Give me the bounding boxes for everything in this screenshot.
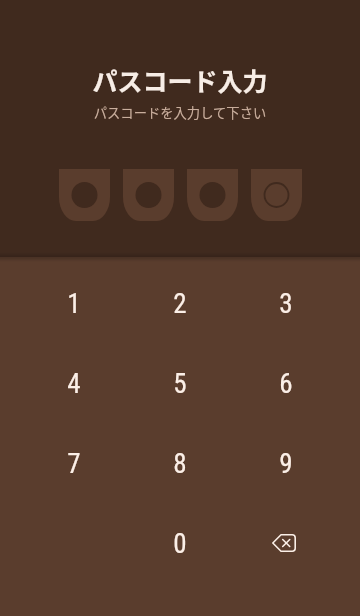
button[interactable]: 9 — [250, 428, 322, 500]
button[interactable] — [187, 169, 238, 221]
staticText: 2 — [173, 288, 187, 320]
button[interactable]: 6 — [250, 348, 322, 420]
button[interactable]: 0 — [144, 508, 216, 580]
staticText: 0 — [173, 528, 187, 560]
button[interactable]: 1 — [38, 268, 110, 340]
button[interactable] — [123, 169, 174, 221]
other: Backspace — [272, 534, 296, 552]
staticText: 6 — [279, 368, 293, 400]
button[interactable]: 5 — [144, 348, 216, 420]
button[interactable]: 2 — [144, 268, 216, 340]
staticText: 3 — [279, 288, 293, 320]
button[interactable]: 8 — [144, 428, 216, 500]
button[interactable] — [59, 169, 110, 221]
button[interactable]: 4 — [38, 348, 110, 420]
staticText: 7 — [67, 448, 81, 480]
staticText: 4 — [67, 368, 81, 400]
button[interactable]: 3 — [250, 268, 322, 340]
staticText: 1 — [67, 288, 81, 320]
staticText: 8 — [173, 448, 187, 480]
button[interactable]: 7 — [38, 428, 110, 500]
staticText: パスコード入力 — [0, 62, 360, 98]
button[interactable]: Backspace — [250, 508, 322, 580]
staticText: 5 — [173, 368, 187, 400]
button[interactable] — [251, 169, 302, 221]
staticText: パスコードを入力して下さい — [0, 103, 360, 122]
staticText: 9 — [279, 448, 293, 480]
